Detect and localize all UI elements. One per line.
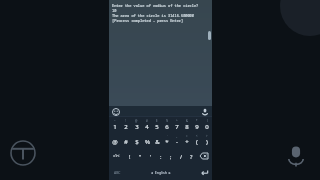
staticText: 9 [195,123,199,131]
button[interactable]: Enter [196,164,212,180]
staticText: < [196,134,198,138]
button[interactable]: Microphone [284,144,308,168]
staticText: 4 [145,123,149,131]
button[interactable]: $ [131,133,142,148]
button[interactable]: % [142,133,152,148]
button[interactable]: " [135,148,146,164]
staticText: # [146,119,148,123]
staticText: % [166,119,169,123]
button[interactable]: ' [146,148,156,164]
staticText: * [196,119,198,123]
button[interactable]: @ [109,133,120,148]
staticText: 2 [124,123,128,131]
staticText: $ [135,138,139,146]
button[interactable]: Enter the value of radius of the circle? [109,0,212,106]
staticText: @ [135,119,138,123]
staticText: " [139,153,142,160]
button[interactable]: _ [172,133,182,148]
button[interactable]: More symbols [109,148,124,164]
button[interactable]: ! [124,148,135,164]
staticText: [Process completed - press Enter] [112,18,184,23]
staticText: · [167,134,168,138]
staticText: 3 [135,123,139,131]
button[interactable]: : [156,148,166,164]
staticText: 1 [113,123,117,131]
button[interactable]: % [162,118,172,133]
button[interactable]: @ [131,118,142,133]
button[interactable]: Stickers [112,108,120,116]
button[interactable]: ~ [109,118,120,133]
button[interactable]: Backspace [196,148,212,164]
staticText: ! [125,119,126,123]
button[interactable]: ^ [172,118,182,133]
button[interactable]: Voice input [201,108,209,116]
staticText: - [176,138,178,146]
button[interactable]: * [192,118,202,133]
staticText: * [165,138,169,146]
staticText: 7 [175,123,179,131]
button[interactable]: Letters keyboard [109,164,126,180]
button[interactable]: · [162,133,172,148]
staticText: + [185,138,189,146]
staticText: ^ [176,119,178,123]
button[interactable]: $ [152,118,162,133]
staticText: _ [176,134,178,138]
staticText: & [186,119,188,123]
staticText: ' [150,153,152,160]
button[interactable]: # [120,133,131,148]
staticText: ( [207,119,208,123]
staticText: % [145,138,150,146]
staticText: ! [129,153,131,160]
staticText: ABC [114,170,121,175]
button[interactable]: ( [202,118,212,133]
staticText: $ [156,119,158,123]
staticText: 10 [112,8,117,13]
staticText: > [206,134,208,138]
button[interactable]: ; [166,148,176,164]
staticText: ? [190,153,193,160]
button[interactable]: / [176,148,186,164]
staticText: 0 [205,123,209,131]
button[interactable]: ? [186,148,196,164]
staticText: The area of the circle is 31416.600000 [112,13,194,18]
staticText: ) [206,138,208,146]
button[interactable]: ◂ English ▸ [126,164,196,180]
staticText: ( [196,138,198,146]
staticText: ; [170,153,172,160]
staticText: & [155,138,160,146]
staticText: ~ [114,119,116,123]
staticText: =\< [113,153,120,159]
button[interactable]: ! [120,118,131,133]
staticText: # [124,138,128,146]
button[interactable]: = [182,133,192,148]
staticText: 6 [165,123,169,131]
staticText: / [180,153,183,160]
staticText: Enter the value of radius of the circle? [112,3,199,8]
button[interactable]: Text tool [10,140,36,166]
button[interactable]: < [192,133,202,148]
button[interactable]: & [152,133,162,148]
staticText: = [186,134,188,138]
button[interactable]: & [182,118,192,133]
staticText: 5 [155,123,159,131]
staticText: 8 [185,123,189,131]
staticText: : [160,153,162,160]
button[interactable]: > [202,133,212,148]
staticText: ◂ English ▸ [151,170,171,175]
button[interactable]: # [142,118,152,133]
staticText: @ [112,138,118,146]
